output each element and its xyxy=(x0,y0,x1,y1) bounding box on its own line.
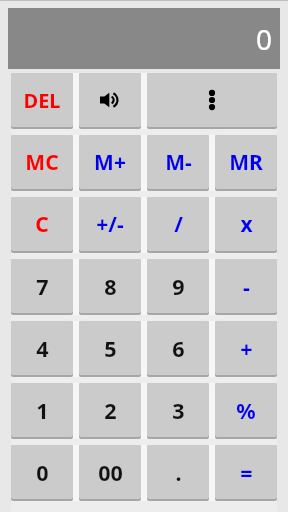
staticText: 00 xyxy=(98,458,123,487)
button[interactable]: M- xyxy=(147,135,209,191)
button[interactable]: - xyxy=(215,259,277,315)
button[interactable]: 9 xyxy=(147,259,209,315)
button[interactable]: More options xyxy=(147,73,277,129)
button[interactable]: C xyxy=(11,197,73,253)
button[interactable]: 0 xyxy=(11,445,73,501)
staticText: - xyxy=(243,272,250,301)
staticText: % xyxy=(236,396,256,425)
button[interactable]: MR xyxy=(215,135,277,191)
button[interactable]: 7 xyxy=(11,259,73,315)
button[interactable]: MC xyxy=(11,135,73,191)
button[interactable]: 1 xyxy=(11,383,73,439)
staticText: M+ xyxy=(94,148,126,177)
button[interactable]: = xyxy=(215,445,277,501)
staticText: 6 xyxy=(172,334,185,363)
staticText: / xyxy=(174,210,183,239)
staticText: 4 xyxy=(36,334,49,363)
button[interactable]: x xyxy=(215,197,277,253)
staticText: x xyxy=(240,210,253,239)
staticText: 5 xyxy=(104,334,117,363)
staticText: 3 xyxy=(172,396,185,425)
button[interactable]: DEL xyxy=(11,73,73,129)
button[interactable]: % xyxy=(215,383,277,439)
staticText: 2 xyxy=(104,396,117,425)
staticText: MR xyxy=(229,148,263,177)
staticText: 0 xyxy=(36,458,49,487)
button[interactable]: 00 xyxy=(79,445,141,501)
button[interactable]: 6 xyxy=(147,321,209,377)
button[interactable]: Sound xyxy=(79,73,141,129)
button[interactable]: . xyxy=(147,445,209,501)
staticText: MC xyxy=(25,148,59,177)
button[interactable]: 2 xyxy=(79,383,141,439)
button[interactable]: 3 xyxy=(147,383,209,439)
button[interactable]: / xyxy=(147,197,209,253)
button[interactable]: + xyxy=(215,321,277,377)
staticText: 0 xyxy=(256,20,273,58)
staticText: +/- xyxy=(96,210,124,239)
staticText: 1 xyxy=(36,396,49,425)
button[interactable]: 4 xyxy=(11,321,73,377)
staticText: M- xyxy=(165,148,192,177)
staticText: 7 xyxy=(36,272,49,301)
button[interactable]: 8 xyxy=(79,259,141,315)
button[interactable]: +/- xyxy=(79,197,141,253)
staticText: + xyxy=(240,334,253,363)
staticText: DEL xyxy=(23,87,61,114)
button[interactable]: 5 xyxy=(79,321,141,377)
staticText: = xyxy=(240,458,253,487)
staticText: . xyxy=(175,458,182,487)
staticText: C xyxy=(35,210,49,239)
button[interactable]: M+ xyxy=(79,135,141,191)
staticText: 8 xyxy=(104,272,117,301)
staticText: 9 xyxy=(172,272,185,301)
